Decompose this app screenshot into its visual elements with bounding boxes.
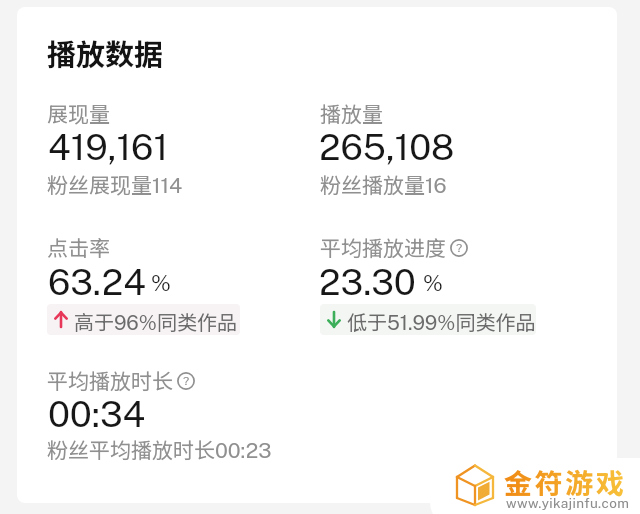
staticText: 播放量 — [320, 98, 383, 128]
staticText: 63.24 — [48, 261, 146, 303]
staticText: ? — [456, 241, 463, 255]
button[interactable]: Help — [177, 372, 195, 390]
staticText: ? — [183, 374, 190, 388]
button[interactable]: Help — [450, 239, 468, 257]
staticText: 低于51.99%同类作品 — [347, 307, 536, 335]
staticText: 平均播放时长 — [47, 365, 173, 395]
staticText: % — [423, 270, 443, 296]
staticText: 265,108 — [319, 126, 455, 168]
staticText: 平均播放进度 — [320, 232, 446, 262]
staticText: 23.30 — [319, 261, 416, 303]
staticText: % — [151, 270, 171, 296]
staticText: 点击率 — [47, 232, 110, 262]
staticText: www.yikajinfu.com — [506, 495, 630, 511]
staticText: 419,161 — [48, 126, 169, 168]
staticText: 高于96%同类作品 — [74, 307, 237, 335]
button[interactable]: 高于96%同类作品 — [47, 304, 240, 335]
staticText: 粉丝展现量114 — [47, 169, 183, 199]
staticText: 00:34 — [48, 393, 146, 435]
staticText: 粉丝播放量16 — [320, 169, 447, 199]
button[interactable]: 低于51.99%同类作品 — [320, 304, 536, 335]
staticText: 金符游戏 — [504, 462, 627, 503]
staticText: 播放数据 — [47, 31, 164, 73]
staticText: 展现量 — [47, 98, 110, 128]
staticText: 粉丝平均播放时长00:23 — [47, 434, 272, 464]
